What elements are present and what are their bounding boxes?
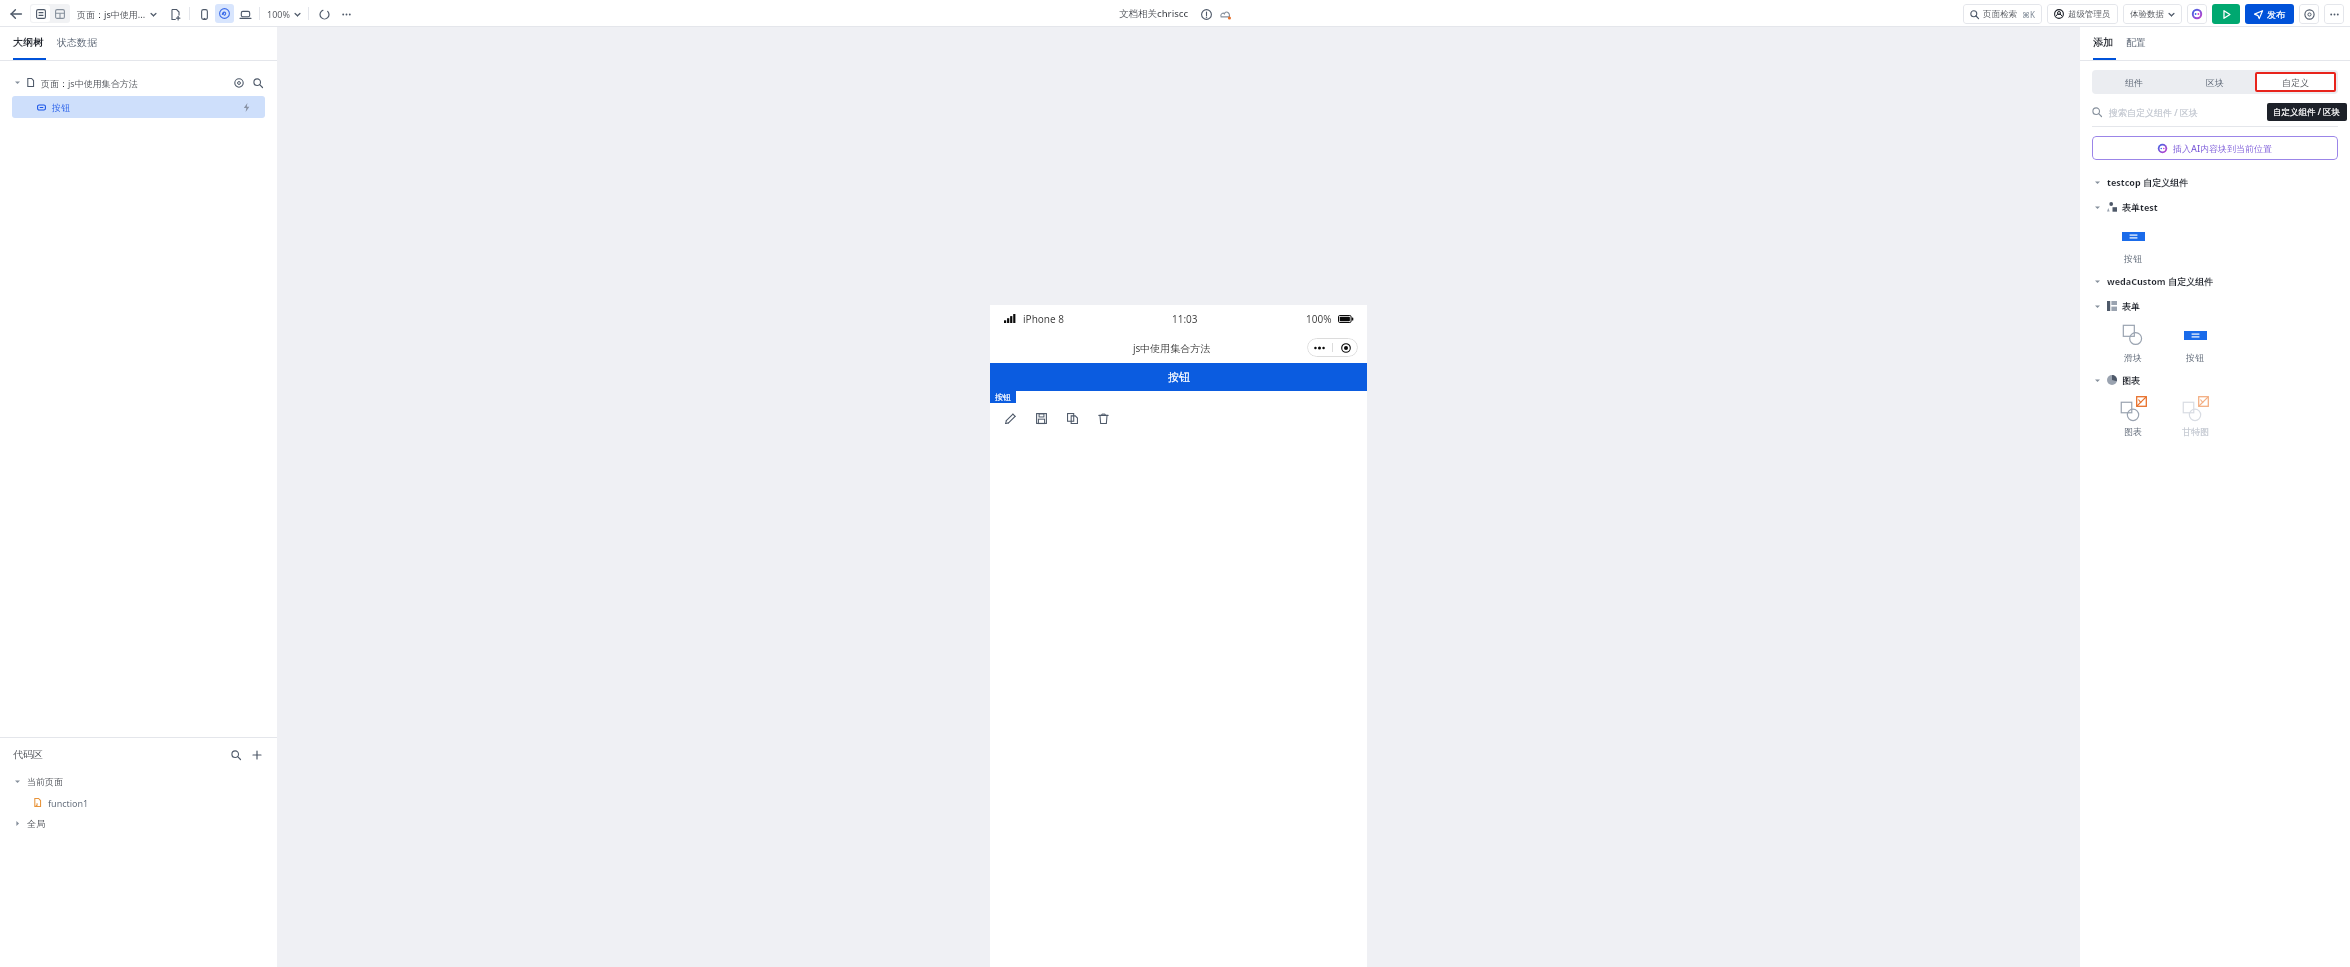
staticText: 添加 [2093,36,2113,49]
staticText: 甘特图 [2182,426,2209,437]
staticText: 表单 [2122,301,2140,312]
button[interactable]: Back [6,4,26,24]
staticText: testcop 自定义组件 [2107,176,2189,188]
button[interactable]: 表单test [2080,198,2350,216]
staticText: 页面：js中使用... [77,8,146,20]
staticText: 100% [267,8,290,20]
button[interactable]: 发布 [2245,4,2294,24]
staticText: 配置 [2126,36,2146,49]
button[interactable]: 甘特图 [2164,395,2226,437]
staticText: 当前页面 [27,776,63,787]
staticText: 区块 [2206,77,2224,88]
staticText: 按钮 [2124,253,2142,264]
button[interactable]: Settings [2299,4,2319,24]
button[interactable]: Desktop preview [236,5,254,23]
button[interactable]: Delete [1092,407,1114,429]
button[interactable]: testcop 自定义组件 [2080,173,2350,191]
staticText: 文档相关chriscc [1119,7,1189,20]
button[interactable]: Close [1333,338,1358,357]
staticText: 表单test [2122,201,2158,213]
button[interactable]: 图表 [2080,371,2350,389]
staticText: 图表 [2124,426,2142,437]
button[interactable]: Grid view [50,5,69,22]
button[interactable]: More [337,5,355,23]
staticText: 状态数据 [57,36,97,49]
button[interactable]: Info [1199,7,1213,21]
button[interactable]: 体验数据 [2123,4,2182,24]
button[interactable]: 页面：js中使用... [77,5,157,23]
staticText: 图表 [2122,375,2140,386]
button[interactable]: 100% [267,5,301,23]
button[interactable]: 全局 [0,813,277,834]
staticText: 全局 [27,818,45,829]
button[interactable]: 配置 [2126,32,2146,53]
button[interactable]: Preview [2212,4,2240,24]
staticText: 自定义 [2282,77,2309,88]
button[interactable]: Page settings [232,76,246,90]
button[interactable]: AI assistant [2187,4,2207,24]
button[interactable]: 自定义 [2255,72,2336,92]
staticText: 大纲树 [13,36,43,49]
button[interactable]: Search code [228,747,243,762]
staticText: 滑块 [2124,352,2142,363]
staticText: 按钮 [2186,352,2204,363]
button[interactable]: 页面检索 [1963,4,2042,24]
staticText: js中使用集合方法 [1133,341,1211,355]
button[interactable]: Phone preview [195,5,213,23]
button[interactable]: More options [2324,4,2344,24]
button[interactable]: 按钮 [2102,222,2164,264]
button[interactable]: 按钮 [990,363,1367,391]
staticText: 体验数据 [2130,9,2164,20]
button[interactable]: 图表 [2102,395,2164,437]
button[interactable]: 当前页面 [0,771,277,792]
button[interactable]: 页面：js中使用集合方法 [0,72,277,93]
button[interactable]: 状态数据 [57,32,97,53]
button[interactable]: 超级管理员 [2047,4,2118,24]
staticText: 按钮 [1168,370,1190,384]
button[interactable]: 搜索自定义组件 / 区块 [2092,102,2338,122]
staticText: 搜索自定义组件 / 区块 [2109,106,2199,118]
staticText: 自定义组件 / 区块 [2273,106,2341,118]
staticText: wedaCustom 自定义组件 [2107,275,2213,287]
button[interactable]: 插入AI内容块到当前位置 [2092,136,2338,160]
staticText: 按钮 [995,392,1011,402]
staticText: 页面检索 [1983,9,2017,20]
button[interactable]: Copy [1061,407,1083,429]
staticText: 代码区 [13,748,43,761]
button[interactable]: Mini program preview [215,4,234,23]
staticText: iPhone 8 [1023,312,1064,326]
button[interactable]: 大纲树 [13,32,43,53]
button[interactable]: 按钮 [12,96,265,118]
button[interactable]: wedaCustom 自定义组件 [2080,272,2350,290]
staticText: 超级管理员 [2068,9,2111,20]
button[interactable]: 按钮 [2164,321,2226,363]
button[interactable]: Add code [249,747,264,762]
staticText: 组件 [2125,77,2143,88]
staticText: 11:03 [1172,312,1198,326]
button[interactable]: Menu [1307,338,1332,357]
staticText: ⌘K [2022,9,2035,20]
staticText: 页面：js中使用集合方法 [41,77,138,89]
button[interactable]: Save [1030,407,1052,429]
staticText: 发布 [2267,9,2285,20]
button[interactable]: 添加 [2093,32,2113,53]
staticText: function1 [48,797,89,809]
button[interactable]: Refresh [315,5,333,23]
button[interactable]: New page [166,5,184,23]
button[interactable]: 组件 [2094,72,2174,92]
button[interactable]: 滑块 [2102,321,2164,363]
button[interactable]: Edit [999,407,1021,429]
button[interactable]: 区块 [2174,72,2255,92]
button[interactable]: 表单 [2080,297,2350,315]
button[interactable]: Outline view [31,5,50,22]
button[interactable]: function1 [0,792,277,813]
staticText: 100% [1306,312,1332,326]
staticText: 按钮 [52,102,70,113]
button[interactable]: Search tree [251,76,265,90]
button[interactable]: Cloud status [1218,7,1232,21]
staticText: 插入AI内容块到当前位置 [2173,142,2273,154]
